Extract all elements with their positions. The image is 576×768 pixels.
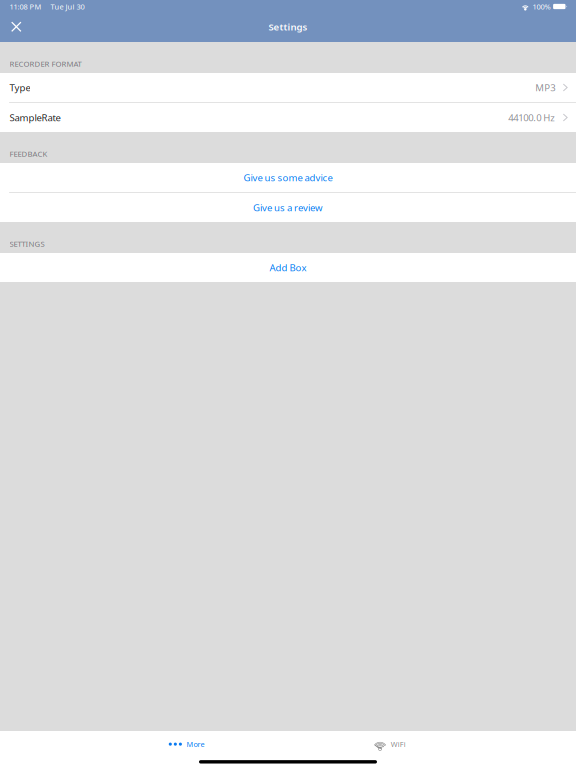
staticText: SampleRate: [9, 111, 60, 124]
staticText: Tue Jul 30: [50, 1, 84, 12]
staticText: 11:08 PM: [9, 1, 41, 12]
button[interactable]: WiFi: [288, 736, 491, 752]
button[interactable]: Add Box: [0, 253, 576, 282]
staticText: Type: [9, 81, 30, 94]
staticText: MP3: [535, 81, 555, 94]
button[interactable]: Close: [0, 16, 33, 38]
button[interactable]: SampleRate: [0, 103, 576, 132]
staticText: Add Box: [269, 261, 306, 274]
staticText: Give us a review: [253, 201, 323, 214]
button[interactable]: Give us a review: [0, 193, 576, 222]
button[interactable]: Give us some advice: [0, 163, 576, 192]
staticText: RECORDER FORMAT: [10, 58, 82, 69]
staticText: 100%: [533, 1, 551, 12]
staticText: FEEDBACK: [10, 148, 48, 159]
staticText: WiFi: [391, 739, 406, 749]
staticText: Settings: [268, 20, 307, 33]
button[interactable]: More: [85, 736, 288, 752]
staticText: More: [186, 739, 204, 749]
staticText: 44100.0 Hz: [508, 111, 555, 124]
staticText: SETTINGS: [10, 238, 45, 249]
button[interactable]: Type: [0, 73, 576, 102]
staticText: Give us some advice: [243, 171, 332, 184]
